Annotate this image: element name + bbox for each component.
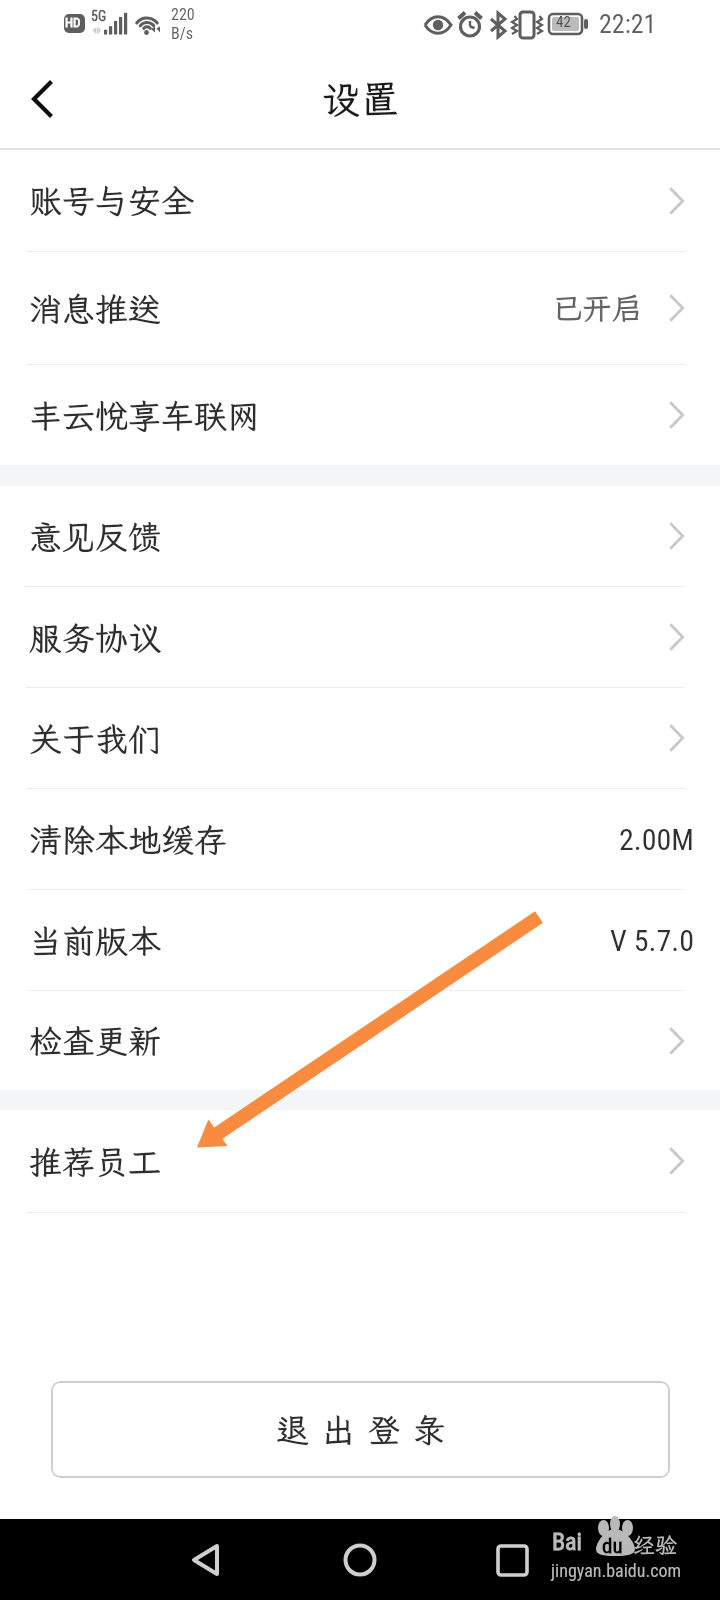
staticText: 220 [171,5,195,24]
staticText: 意见反馈 [29,515,161,558]
staticText: 42 [556,13,571,31]
staticText: 关于我们 [29,717,161,760]
staticText: 经验 [633,1530,678,1559]
button[interactable]: 退出登录 [51,1381,670,1478]
staticText: 丰云悦享车联网 [29,394,260,437]
button[interactable]: 服务协议 [0,587,720,687]
staticText: 清除本地缓存 [29,818,227,861]
button[interactable]: 返回 [165,1520,245,1600]
button[interactable]: 关于我们 [0,688,720,788]
staticText: 账号与安全 [29,179,194,222]
button[interactable]: 消息推送 [0,252,720,364]
staticText: 已开启 [552,288,642,328]
button[interactable]: 账号与安全 [0,150,720,251]
staticText: 2.00M [619,822,694,857]
staticText: 消息推送 [29,287,161,330]
staticText: 推荐员工 [29,1140,161,1183]
button[interactable]: 丰云悦享车联网 [0,365,720,465]
staticText: 当前版本 [29,919,161,962]
button[interactable]: 推荐员工 [0,1110,720,1212]
staticText: du [602,1534,623,1559]
button[interactable]: 主页 [320,1520,400,1600]
staticText: HD [65,15,81,30]
staticText: 服务协议 [29,616,161,659]
staticText: 5G [91,8,107,24]
button[interactable]: 检查更新 [0,991,720,1090]
button[interactable]: 清除本地缓存 [0,789,720,889]
staticText: 22:21 [599,9,657,39]
button[interactable]: 意见反馈 [0,486,720,586]
button[interactable]: 返回 [0,50,84,148]
staticText: 设置 [321,73,400,124]
staticText: 退出登录 [270,1408,452,1451]
staticText: 检查更新 [29,1019,161,1062]
button[interactable]: 最近任务 [472,1520,552,1600]
staticText: B/s [171,24,193,43]
staticText: Bai [552,1528,583,1556]
staticText: jingyan.baidu.com [551,1560,682,1581]
button[interactable]: 当前版本 [0,890,720,990]
staticText: V 5.7.0 [610,923,694,958]
